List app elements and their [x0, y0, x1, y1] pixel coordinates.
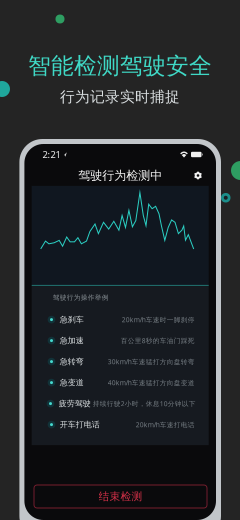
staticText: 疲劳驾驶	[59, 399, 91, 408]
staticText: 20km/h车速时一脚刹停	[122, 315, 195, 324]
staticText: 智能检测驾驶安全	[28, 52, 212, 80]
button[interactable]: 疲劳驾驶	[32, 393, 209, 414]
staticText: 驾驶行为操作举例	[53, 293, 109, 302]
button[interactable]: 开车打电话	[32, 414, 209, 435]
staticText: 40km/h车速猛打方向盘变道	[108, 378, 195, 387]
staticText: 百公里8秒的车油门踩死	[121, 336, 195, 345]
staticText: 持续行驶2小时，休息10分钟以下	[93, 399, 196, 408]
staticText: 驾驶行为检测中	[78, 168, 162, 183]
button[interactable]: 急转弯	[32, 351, 209, 372]
staticText: 开车打电话	[60, 420, 100, 429]
button[interactable]: 急变道	[32, 372, 209, 393]
staticText: 结束检测	[98, 490, 142, 503]
staticText: 30km/h车速猛打方向盘转弯	[108, 357, 195, 366]
button[interactable]: 急刹车	[32, 309, 209, 330]
staticText: 急转弯	[60, 357, 84, 366]
button[interactable]: 急加速	[32, 330, 209, 351]
staticText: 20km/h车速打电话	[136, 420, 195, 429]
staticText: 行为记录实时捕捉	[60, 88, 180, 106]
staticText: 急刹车	[60, 315, 84, 324]
button[interactable]: 结束检测	[34, 485, 207, 508]
staticText: 急加速	[60, 336, 84, 345]
staticText: 2:21	[42, 148, 60, 161]
staticText: 急变道	[60, 378, 84, 387]
button[interactable]: Settings	[189, 167, 207, 183]
